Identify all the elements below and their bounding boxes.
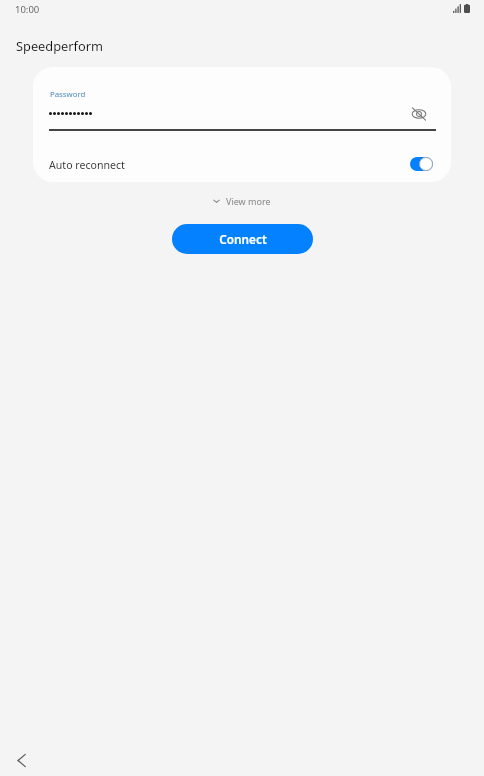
button[interactable]: Auto reconnect (410, 157, 433, 171)
staticText: Password (50, 89, 86, 100)
button[interactable]: Hide password (408, 103, 430, 125)
button[interactable]: Auto reconnect (33, 149, 451, 181)
staticText: 10:00 (15, 3, 40, 16)
staticText: Connect (219, 231, 267, 247)
button[interactable]: Back (9, 748, 33, 772)
staticText: Auto reconnect (49, 158, 125, 172)
button[interactable]: View more (207, 192, 277, 210)
staticText: Speedperform (16, 37, 103, 54)
button[interactable]: Connect (172, 224, 313, 254)
staticText: View more (226, 195, 271, 207)
